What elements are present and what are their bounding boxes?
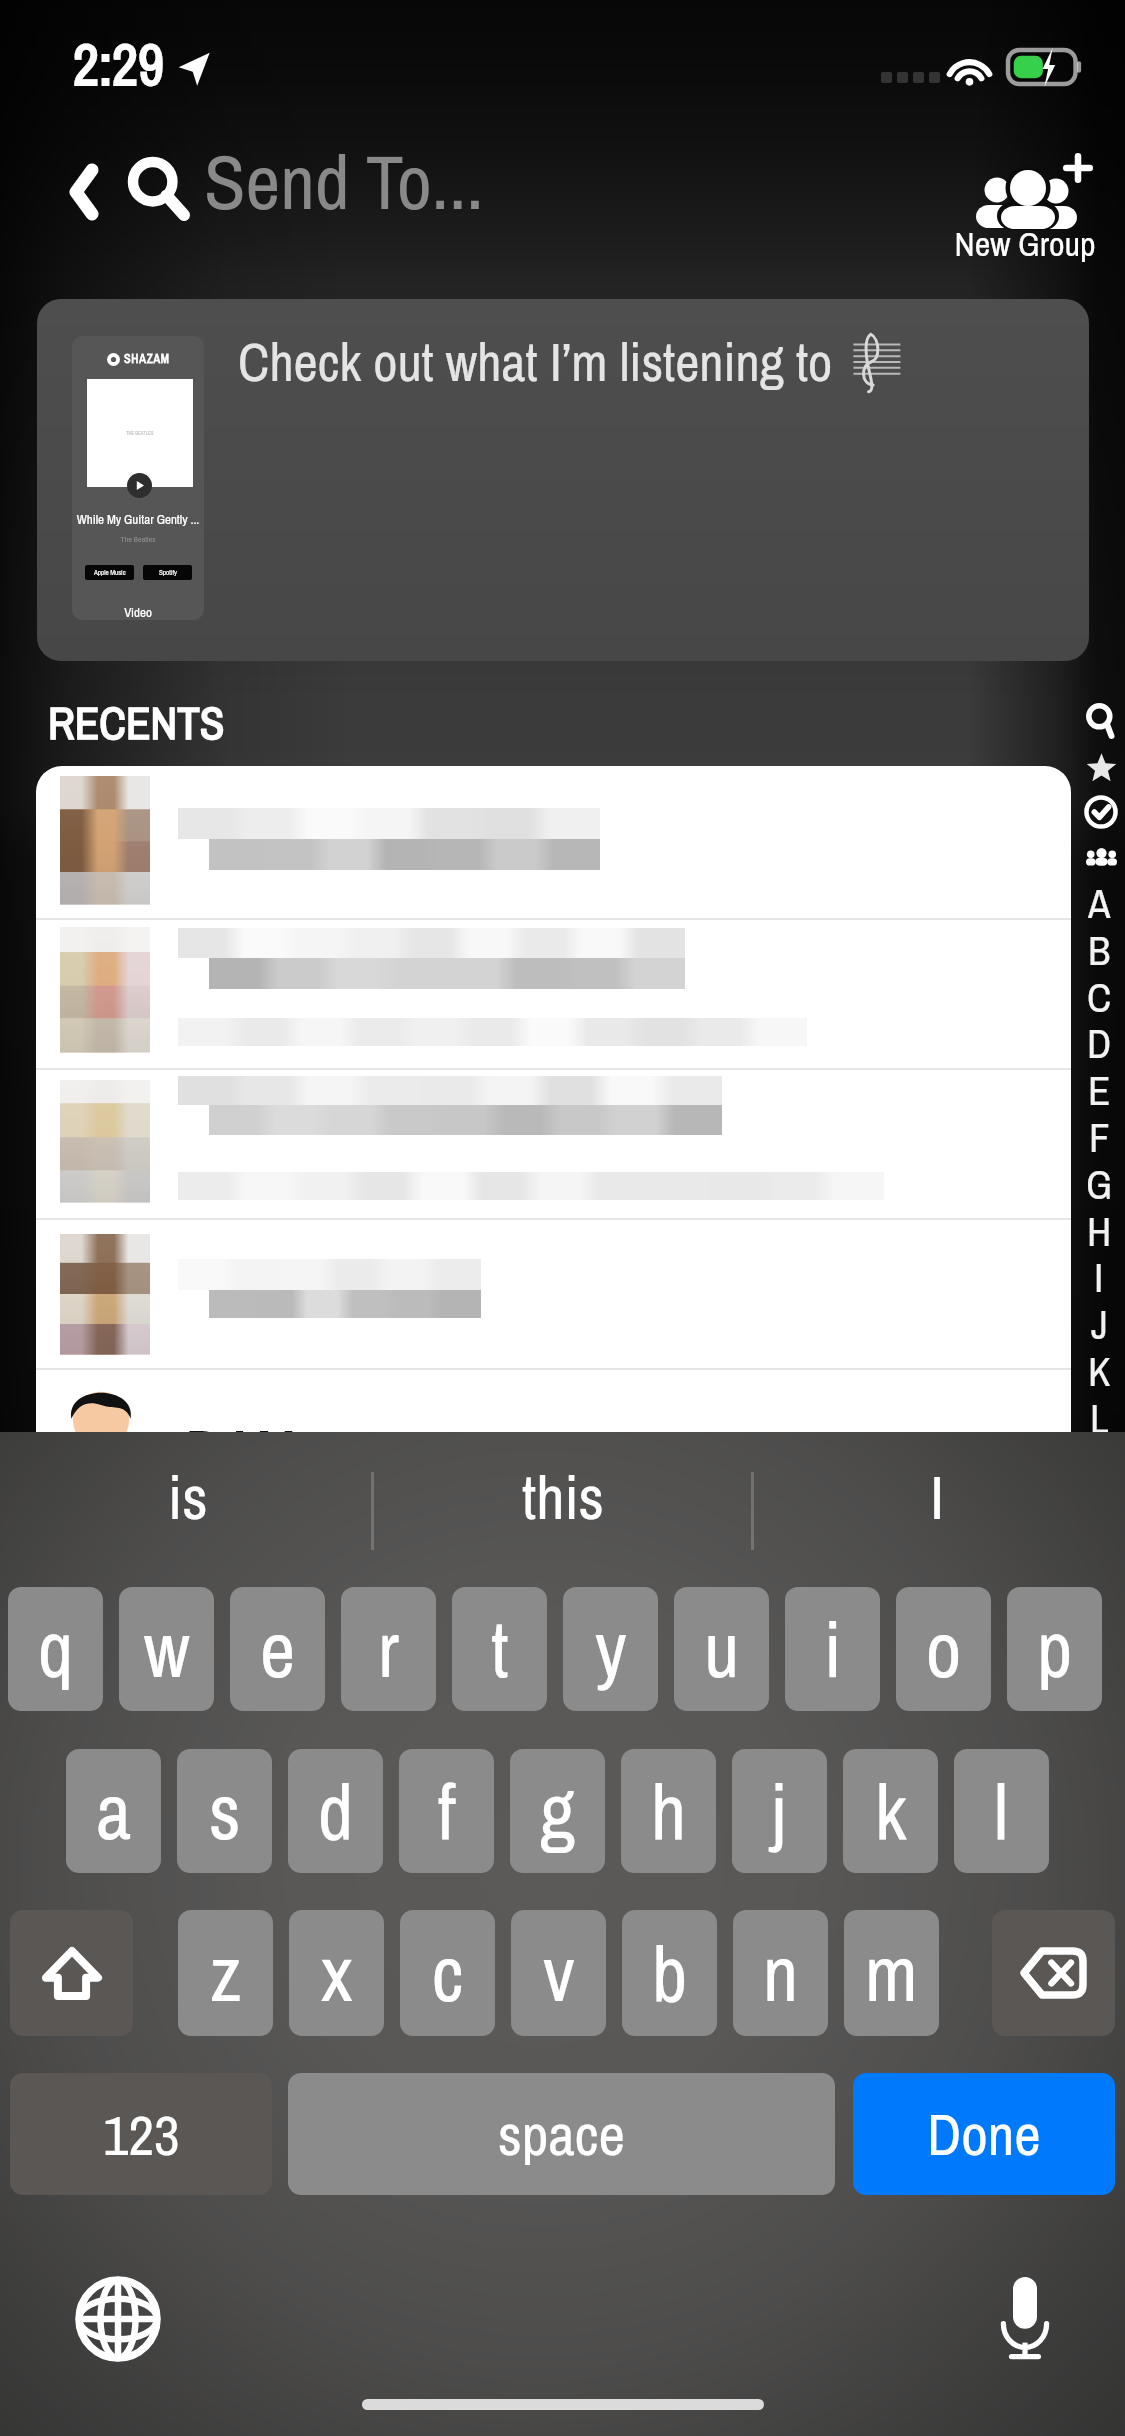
- button[interactable]: I: [1076, 1250, 1122, 1296]
- button[interactable]: j: [732, 1749, 827, 1873]
- staticText: s: [209, 1759, 241, 1863]
- button[interactable]: H: [1076, 1204, 1122, 1250]
- staticText: I: [1094, 1250, 1104, 1296]
- button[interactable]: D: [1076, 1016, 1122, 1062]
- staticText: i: [824, 1597, 842, 1701]
- staticText: is: [168, 1455, 208, 1539]
- button[interactable]: o: [896, 1587, 991, 1711]
- staticText: b: [652, 1921, 688, 2025]
- staticText: y: [595, 1597, 627, 1701]
- staticText: j: [772, 1759, 787, 1863]
- button[interactable]: K: [1076, 1344, 1122, 1390]
- button[interactable]: q: [8, 1587, 103, 1711]
- staticText: THE BEATLES: [126, 430, 154, 437]
- staticText: n: [763, 1921, 799, 2025]
- button[interactable]: this: [375, 1432, 750, 1562]
- staticText: Check out what I’m listening to: [238, 326, 833, 397]
- button[interactable]: Search recipients: [126, 132, 886, 244]
- staticText: The Beatles: [74, 534, 202, 545]
- button[interactable]: r: [341, 1587, 436, 1711]
- button[interactable]: Jump to favourites: [1078, 745, 1124, 789]
- staticText: K: [1088, 1344, 1111, 1390]
- staticText: a: [96, 1759, 132, 1863]
- staticText: t: [491, 1597, 509, 1701]
- button[interactable]: J: [1076, 1297, 1122, 1343]
- staticText: I: [930, 1455, 945, 1539]
- button[interactable]: s: [177, 1749, 272, 1873]
- button[interactable]: x: [289, 1910, 384, 2036]
- staticText: 123: [103, 2097, 180, 2172]
- button[interactable]: t: [452, 1587, 547, 1711]
- staticText: E: [1088, 1063, 1111, 1109]
- button[interactable]: e: [230, 1587, 325, 1711]
- staticText: H: [1087, 1204, 1112, 1250]
- staticText: A: [1088, 876, 1111, 922]
- button[interactable]: p: [1007, 1587, 1102, 1711]
- button[interactable]: i: [785, 1587, 880, 1711]
- staticText: While My Guitar Gently ...: [74, 511, 202, 529]
- button[interactable]: DJ X: [36, 1370, 1071, 1432]
- button[interactable]: Jump to groups: [1078, 838, 1124, 876]
- button[interactable]: is: [0, 1432, 375, 1562]
- staticText: Send To...: [204, 130, 484, 232]
- staticText: k: [875, 1759, 907, 1863]
- button[interactable]: Jump to search: [1078, 696, 1124, 744]
- button[interactable]: E: [1076, 1063, 1122, 1109]
- staticText: d: [318, 1759, 354, 1863]
- button[interactable]: I: [750, 1432, 1125, 1562]
- button[interactable]: space: [288, 2073, 835, 2195]
- staticText: Apple Music: [94, 568, 126, 577]
- staticText: g: [540, 1759, 576, 1863]
- button[interactable]: Backspace: [992, 1910, 1115, 2036]
- staticText: v: [543, 1921, 575, 2025]
- button[interactable]: d: [288, 1749, 383, 1873]
- button[interactable]: Jump to best friends: [1078, 790, 1124, 834]
- button[interactable]: B: [1076, 923, 1122, 969]
- button[interactable]: Play preview: [127, 473, 152, 498]
- button[interactable]: G: [1076, 1157, 1122, 1203]
- button[interactable]: w: [119, 1587, 214, 1711]
- staticText: z: [210, 1921, 242, 2025]
- button[interactable]: f: [399, 1749, 494, 1873]
- staticText: e: [260, 1597, 296, 1701]
- button[interactable]: [36, 918, 1071, 1068]
- staticText: w: [144, 1597, 190, 1701]
- button[interactable]: New Group: [940, 148, 1100, 268]
- button[interactable]: [36, 1068, 1071, 1218]
- button[interactable]: Change keyboard: [73, 2274, 163, 2364]
- button[interactable]: c: [400, 1910, 495, 2036]
- staticText: G: [1086, 1157, 1113, 1203]
- button[interactable]: [36, 766, 1071, 918]
- staticText: o: [926, 1597, 962, 1701]
- button[interactable]: Done: [853, 2073, 1115, 2195]
- staticText: RECENTS: [48, 692, 225, 753]
- button[interactable]: SHAZAM: [37, 299, 1089, 661]
- button[interactable]: h: [621, 1749, 716, 1873]
- button[interactable]: v: [511, 1910, 606, 2036]
- button[interactable]: A: [1076, 876, 1122, 922]
- staticText: L: [1090, 1391, 1109, 1437]
- button[interactable]: [36, 1218, 1071, 1368]
- button[interactable]: g: [510, 1749, 605, 1873]
- button[interactable]: b: [622, 1910, 717, 2036]
- button[interactable]: 123: [10, 2073, 272, 2195]
- button[interactable]: L: [1076, 1391, 1122, 1437]
- button[interactable]: a: [66, 1749, 161, 1873]
- button[interactable]: y: [563, 1587, 658, 1711]
- staticText: h: [651, 1759, 687, 1863]
- button[interactable]: l: [954, 1749, 1049, 1873]
- button[interactable]: C: [1076, 970, 1122, 1016]
- button[interactable]: k: [843, 1749, 938, 1873]
- button[interactable]: n: [733, 1910, 828, 2036]
- button[interactable]: Back: [38, 144, 130, 240]
- button[interactable]: m: [844, 1910, 939, 2036]
- button[interactable]: z: [178, 1910, 273, 2036]
- button[interactable]: u: [674, 1587, 769, 1711]
- button[interactable]: F: [1076, 1110, 1122, 1156]
- staticText: D: [1087, 1016, 1112, 1062]
- button[interactable]: Shift: [10, 1910, 133, 2036]
- staticText: SHAZAM: [124, 351, 170, 367]
- staticText: Spotify: [159, 568, 177, 577]
- staticText: l: [994, 1759, 1009, 1863]
- button[interactable]: Dictate: [980, 2270, 1070, 2366]
